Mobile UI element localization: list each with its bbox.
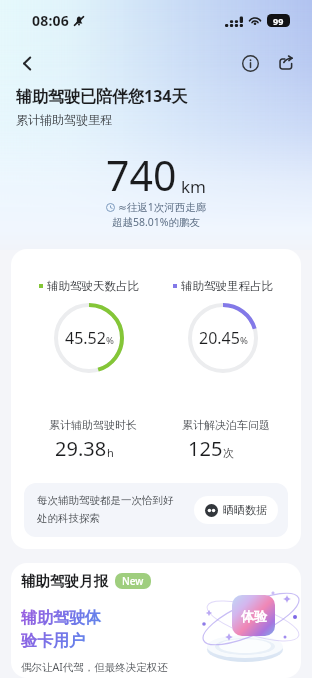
- staticText: 累计辅助驾驶时长: [49, 418, 137, 432]
- staticText: 20.45: [199, 327, 240, 349]
- staticText: 超越58.01%的鹏友: [112, 215, 201, 229]
- staticText: 每次辅助驾驶都是一次恰到好处的科技探索: [37, 494, 179, 526]
- staticText: 45.52: [65, 327, 106, 349]
- button[interactable]: Back: [9, 45, 45, 81]
- staticText: 辅助驾驶里程占比: [181, 279, 273, 293]
- staticText: 次: [223, 446, 234, 460]
- staticText: 辅助驾驶体 验卡用户: [21, 608, 101, 651]
- staticText: 晒晒数据: [223, 503, 267, 517]
- staticText: New: [122, 574, 144, 588]
- staticText: ≈往返1次河西走廊: [118, 200, 207, 214]
- button[interactable]: Share: [269, 47, 301, 79]
- staticText: 99: [273, 15, 284, 27]
- staticText: 740: [106, 147, 177, 203]
- staticText: 体验: [241, 608, 267, 624]
- staticText: 偶尔让AI代驾，但最终决定权还: [21, 660, 168, 674]
- staticText: 辅助驾驶月报: [21, 572, 108, 590]
- staticText: %: [240, 334, 248, 347]
- button[interactable]: Info: [234, 47, 266, 79]
- button[interactable]: 晒晒数据: [194, 496, 278, 524]
- staticText: 累计解决泊车问题: [182, 418, 270, 432]
- staticText: 125: [188, 435, 223, 462]
- staticText: km: [181, 175, 206, 198]
- staticText: 累计辅助驾驶里程: [16, 112, 112, 127]
- staticText: 辅助驾驶天数占比: [47, 279, 139, 293]
- staticText: h: [107, 445, 114, 460]
- staticText: 08:06: [32, 11, 69, 30]
- staticText: 辅助驾驶已陪伴您134天: [16, 85, 188, 107]
- staticText: 29.38: [55, 435, 107, 462]
- staticText: %: [106, 334, 114, 347]
